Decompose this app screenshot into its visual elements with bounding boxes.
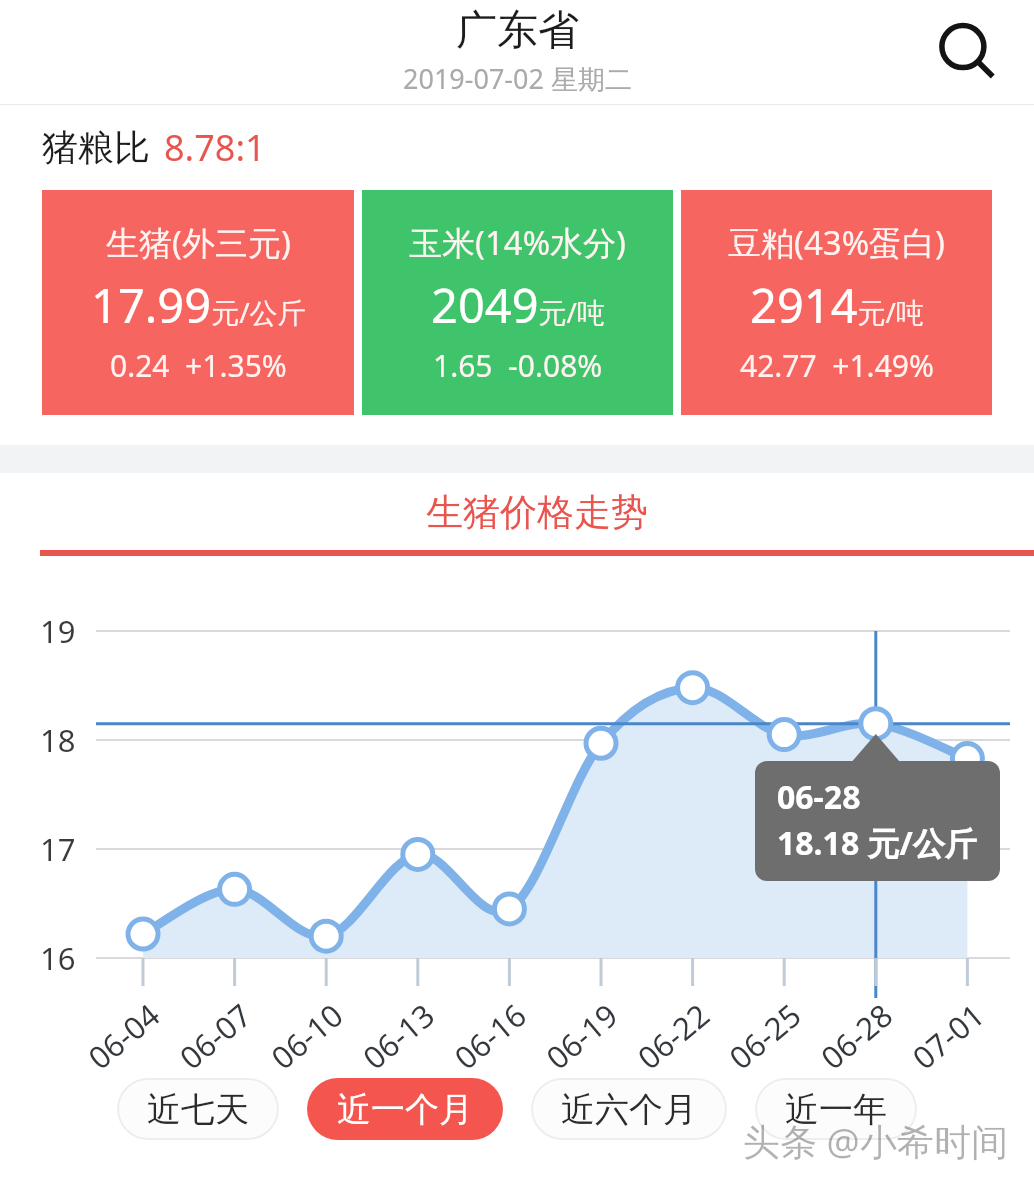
staticText: 广东省 — [456, 5, 579, 57]
staticText: 猪粮比 — [42, 125, 150, 170]
staticText: 近七天 — [147, 1088, 249, 1131]
staticText: 生猪(外三元) — [106, 220, 291, 265]
staticText: 17.99元/公斤 — [91, 273, 306, 337]
staticText: 头条 @小希时间 — [743, 1115, 1008, 1166]
staticText: 生猪价格走势 — [426, 489, 648, 536]
staticText: 近一个月 — [337, 1088, 473, 1131]
button[interactable]: Search — [920, 5, 1016, 101]
button[interactable]: 近一个月 — [307, 1078, 503, 1140]
staticText: 8.78:1 — [164, 123, 266, 172]
staticText: 2019-07-02 星期二 — [403, 60, 632, 97]
staticText: 2914元/吨 — [750, 273, 924, 337]
staticText: 1.65 -0.08% — [433, 345, 603, 386]
staticText: 42.77 +1.49% — [740, 345, 934, 386]
staticText: 0.24 +1.35% — [110, 345, 287, 386]
button[interactable]: 玉米(14%水分) — [362, 190, 673, 415]
staticText: 玉米(14%水分) — [409, 220, 626, 265]
button[interactable]: 豆粕(43%蛋白) — [681, 190, 992, 415]
button[interactable]: 近七天 — [117, 1078, 279, 1140]
staticText: 豆粕(43%蛋白) — [728, 220, 945, 265]
button[interactable]: 生猪价格走势 — [40, 489, 1034, 556]
button[interactable]: 生猪(外三元) — [42, 190, 354, 415]
staticText: 2049元/吨 — [431, 273, 605, 337]
button[interactable]: 近一年 — [755, 1078, 917, 1140]
staticText: 近六个月 — [561, 1088, 697, 1131]
button[interactable]: 近六个月 — [531, 1078, 727, 1140]
staticText: 近一年 — [785, 1088, 887, 1131]
